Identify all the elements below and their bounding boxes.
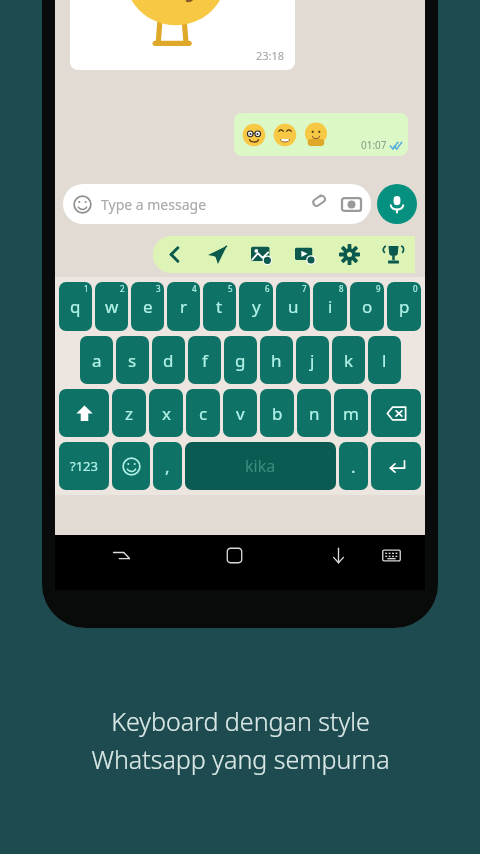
staticText: f [202,349,208,372]
button[interactable]: Settings [327,236,371,273]
button[interactable]: q [59,282,92,331]
staticText: 6 [265,283,270,294]
button[interactable]: kika [185,442,336,490]
staticText: Whatsapp yang sempurna [91,742,390,776]
staticText: 01:07 [361,138,387,152]
staticText: 2 [120,283,125,294]
staticText: q [70,295,81,318]
staticText: m [343,402,359,425]
staticText: h [271,349,282,372]
staticText: r [180,295,188,318]
staticText: j [310,349,315,372]
staticText: g [235,349,246,372]
button[interactable]: i [313,282,347,331]
button[interactable]: j [296,336,329,384]
button[interactable]: e [131,282,164,331]
button[interactable]: Switch keyboard [370,535,412,575]
staticText: a [92,349,102,372]
button[interactable]: ?123 [59,442,109,490]
staticText: d [163,349,174,372]
staticText: k [344,349,354,372]
button[interactable]: r [167,282,200,331]
button[interactable]: a [80,336,113,384]
button[interactable]: Enter [371,442,421,490]
staticText: b [272,402,283,425]
staticText: l [382,349,387,372]
staticText: . [351,455,356,478]
button[interactable]: . [339,442,368,490]
button[interactable]: k [332,336,365,384]
button[interactable]: Rewards [371,236,415,273]
button[interactable]: Video [283,236,327,273]
staticText: 8 [339,283,344,294]
staticText: z [125,402,133,425]
button[interactable]: Recents [100,535,142,575]
staticText: 7 [302,283,307,294]
button[interactable]: y [239,282,273,331]
staticText: 5 [228,283,233,294]
button[interactable]: Backspace [371,389,421,437]
button[interactable]: c [186,389,220,437]
button[interactable]: Voice message [377,184,417,224]
button[interactable]: Back [153,236,196,273]
button[interactable]: o [350,282,384,331]
staticText: p [399,295,410,318]
staticText: kika [245,455,276,477]
staticText: y [252,295,261,318]
button[interactable]: f [188,336,221,384]
button[interactable]: z [112,389,146,437]
staticText: , [165,455,170,478]
staticText: u [288,295,299,318]
staticText: n [309,402,320,425]
button[interactable]: v [223,389,257,437]
button[interactable]: Send [196,236,239,273]
staticText: v [236,402,245,425]
staticText: 1 [84,283,89,294]
staticText: c [199,402,208,425]
button[interactable]: Emoji [112,442,150,490]
button[interactable]: n [297,389,331,437]
button[interactable]: Images [239,236,283,273]
button[interactable]: Camera [342,195,361,214]
button[interactable]: , [153,442,182,490]
staticText: ?123 [70,457,98,475]
button[interactable]: l [368,336,401,384]
staticText: w [105,295,119,318]
button[interactable]: Attach [311,194,331,214]
button[interactable]: p [387,282,421,331]
button[interactable]: w [95,282,128,331]
button[interactable]: 23:18 [70,0,295,70]
staticText: Type a message [101,195,207,214]
button[interactable]: Home [213,535,255,575]
button[interactable]: Hide keyboard [317,535,359,575]
button[interactable]: x [149,389,183,437]
button[interactable]: d [152,336,185,384]
button[interactable]: m [334,389,368,437]
staticText: 4 [192,283,197,294]
staticText: 3 [156,283,161,294]
staticText: 23:18 [256,48,285,63]
button[interactable]: h [260,336,293,384]
staticText: 0 [413,283,418,294]
button[interactable]: Type a message [63,184,371,224]
staticText: 9 [376,283,381,294]
staticText: x [162,402,171,425]
button[interactable]: Shift [59,389,109,437]
staticText: Keyboard dengan style [111,704,370,738]
staticText: o [362,295,373,318]
button[interactable]: g [224,336,257,384]
button[interactable]: u [276,282,310,331]
staticText: s [128,349,137,372]
staticText: e [143,295,153,318]
button[interactable]: 01:07 [234,113,408,156]
button[interactable]: b [260,389,294,437]
staticText: i [328,295,333,318]
button[interactable]: t [203,282,236,331]
button[interactable]: s [116,336,149,384]
staticText: t [216,295,223,318]
